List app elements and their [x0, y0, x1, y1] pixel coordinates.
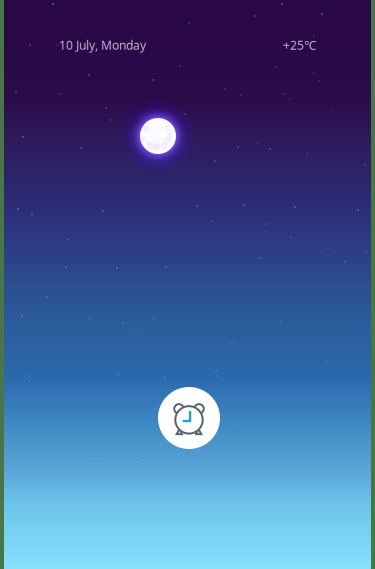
staticText: 10 July, Monday	[59, 37, 146, 53]
button[interactable]: Set alarm	[158, 387, 220, 449]
staticText: +25℃	[283, 37, 316, 53]
